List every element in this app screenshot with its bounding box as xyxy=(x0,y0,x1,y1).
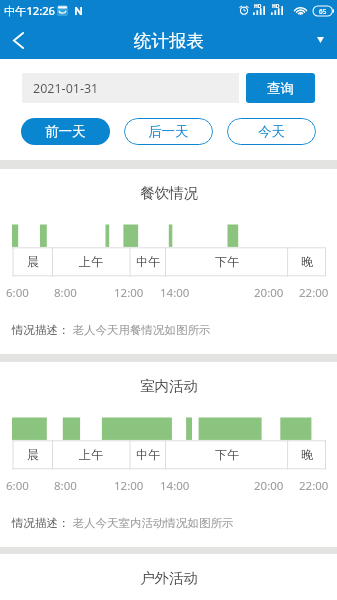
staticText: 22:00 xyxy=(299,285,329,301)
staticText: 晚 xyxy=(301,254,313,269)
staticText: 前一天 xyxy=(45,123,86,140)
staticText: 下午 xyxy=(215,254,239,269)
staticText: 中午 xyxy=(136,254,160,269)
staticText: 餐饮情况 xyxy=(140,184,198,202)
staticText: 后一天 xyxy=(148,123,189,140)
staticText: 14:00 xyxy=(160,285,190,301)
button[interactable]: 后一天 xyxy=(124,118,213,145)
staticText: 20:00 xyxy=(254,478,284,494)
staticText: 12:00 xyxy=(114,478,144,494)
button[interactable]: 2021-01-31 xyxy=(22,73,239,103)
staticText: 晚 xyxy=(301,447,313,462)
staticText: 情况描述： 老人今天室内活动情况如图所示 xyxy=(12,515,234,531)
staticText: 12:00 xyxy=(114,285,144,301)
staticText: 今天 xyxy=(258,123,285,140)
staticText: 室内活动 xyxy=(140,377,198,395)
staticText: HD xyxy=(254,3,262,10)
staticText: 8:00 xyxy=(54,478,77,494)
button[interactable]: Back xyxy=(0,22,36,59)
staticText: 上午 xyxy=(79,254,103,269)
staticText: 户外活动 xyxy=(140,569,198,587)
staticText: 下午 xyxy=(215,447,239,462)
staticText: 情况描述： 老人今天用餐情况如图所示 xyxy=(12,322,211,338)
staticText: 晨 xyxy=(27,447,39,462)
staticText: 6:00 xyxy=(6,478,29,494)
button[interactable]: 前一天 xyxy=(21,118,110,145)
staticText: 查询 xyxy=(267,80,294,97)
staticText: 2021-01-31 xyxy=(33,80,99,97)
staticText: 中午 xyxy=(136,447,160,462)
staticText: 晨 xyxy=(27,254,39,269)
staticText: 14:00 xyxy=(160,478,190,494)
staticText: 6:00 xyxy=(6,285,29,301)
staticText: 65 xyxy=(319,7,327,16)
staticText: 22:00 xyxy=(299,478,329,494)
staticText: 统计报表 xyxy=(134,30,204,52)
staticText: 20:00 xyxy=(254,285,284,301)
staticText: 上午 xyxy=(79,447,103,462)
button[interactable]: 今天 xyxy=(227,118,316,145)
staticText: 中午12:26 xyxy=(4,3,56,18)
button[interactable]: 查询 xyxy=(246,73,315,103)
staticText: 8:00 xyxy=(54,285,77,301)
button[interactable]: More options xyxy=(303,22,337,59)
staticText: HD xyxy=(272,3,280,10)
